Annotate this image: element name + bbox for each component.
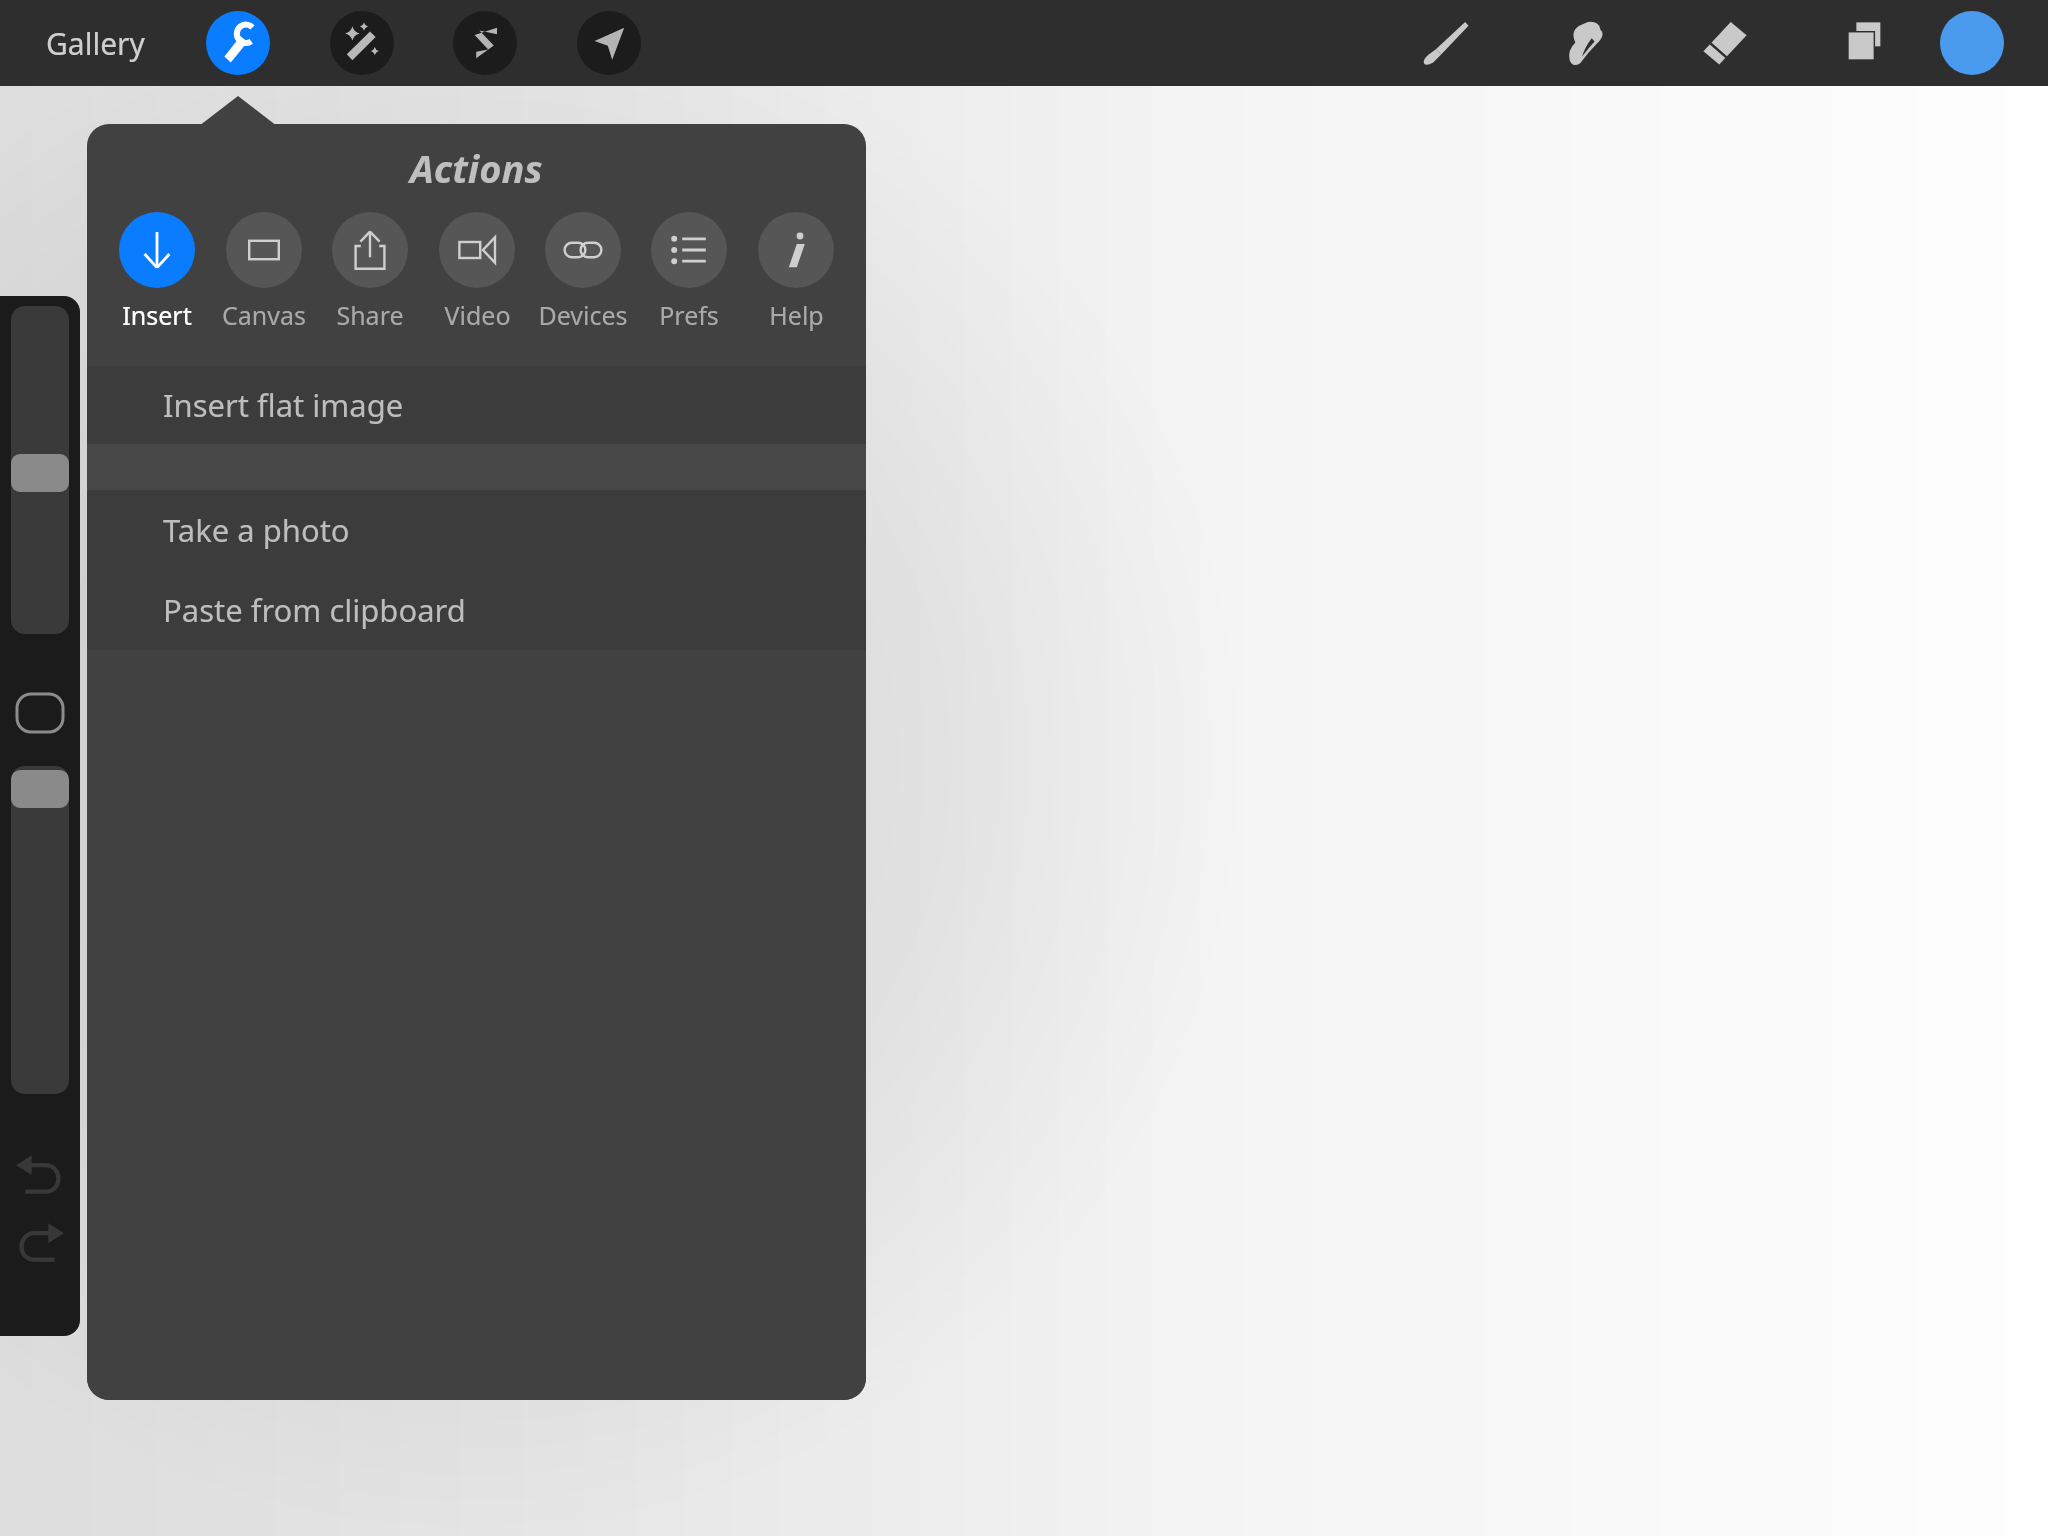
staticText: Take a photo xyxy=(163,509,350,551)
button[interactable]: Undo xyxy=(14,1148,66,1200)
button[interactable]: Gallery xyxy=(36,0,155,86)
button[interactable]: Transform xyxy=(577,11,641,75)
button[interactable]: Insert xyxy=(109,212,205,332)
button[interactable]: Canvas xyxy=(216,212,312,332)
button[interactable]: Share xyxy=(322,212,418,332)
button[interactable]: Smudge xyxy=(1553,11,1617,75)
button[interactable]: Prefs xyxy=(641,212,737,332)
staticText: Insert xyxy=(122,298,192,332)
button[interactable]: Adjustments xyxy=(330,11,394,75)
button[interactable]: Paintbrush xyxy=(1413,11,1477,75)
button[interactable]: Redo xyxy=(14,1216,66,1268)
button[interactable]: Help xyxy=(748,212,844,332)
button[interactable]: Devices xyxy=(535,212,631,332)
staticText: Help xyxy=(769,298,824,332)
button[interactable]: Actions xyxy=(206,11,270,75)
button[interactable]: Layers xyxy=(1833,11,1897,75)
staticText: Prefs xyxy=(659,298,719,332)
button[interactable]: Insert flat image xyxy=(87,366,866,444)
button[interactable]: Brush size xyxy=(11,306,69,634)
staticText: Canvas xyxy=(222,298,306,332)
button[interactable]: Video xyxy=(429,212,525,332)
button[interactable]: Color xyxy=(1940,11,2004,75)
button[interactable]: Selection xyxy=(453,11,517,75)
staticText: Video xyxy=(444,298,511,332)
staticText: Insert flat image xyxy=(163,384,404,426)
button[interactable]: Modify xyxy=(17,694,63,732)
staticText: Gallery xyxy=(46,23,145,64)
staticText: Actions xyxy=(410,142,543,194)
button[interactable]: Eraser xyxy=(1693,11,1757,75)
button[interactable]: Paste from clipboard xyxy=(87,570,866,650)
staticText: Devices xyxy=(538,298,628,332)
staticText: Share xyxy=(336,298,404,332)
button[interactable]: Take a photo xyxy=(87,490,866,570)
staticText: Paste from clipboard xyxy=(163,589,466,631)
button[interactable]: Opacity xyxy=(11,766,69,1094)
